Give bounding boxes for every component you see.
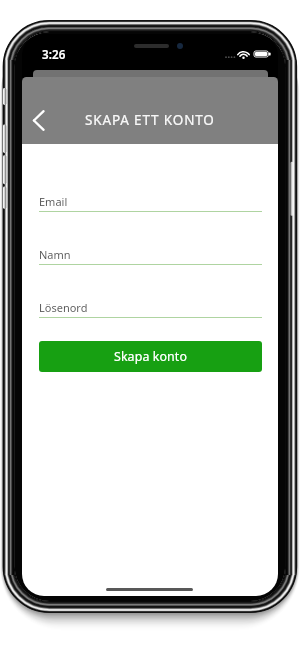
button[interactable]: Skapa konto [39,341,262,372]
staticText: Lösenord [39,300,88,315]
staticText: SKAPA ETT KONTO [85,111,215,129]
staticText: 3:26 [42,47,66,63]
staticText: Skapa konto [114,348,188,365]
button[interactable]: Back [30,104,60,136]
staticText: Email [39,194,68,209]
staticText: Namn [39,247,71,262]
